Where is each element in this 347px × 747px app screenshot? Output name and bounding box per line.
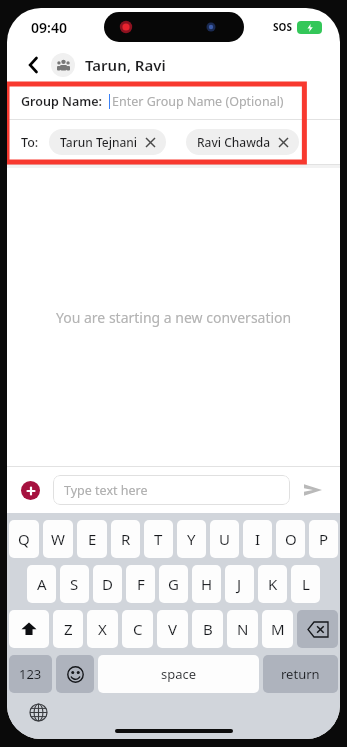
staticText: Ravi Chawda (197, 134, 271, 150)
staticText: B (203, 619, 213, 639)
button[interactable]: P (309, 520, 338, 558)
staticText: To: (21, 134, 39, 151)
button[interactable]: W (43, 520, 73, 558)
button[interactable]: L (291, 565, 320, 603)
staticText: 123 (19, 665, 42, 683)
button[interactable]: H (192, 565, 221, 603)
button[interactable]: Group Name: (7, 84, 340, 119)
staticText: Type text here (64, 482, 148, 499)
staticText: F (137, 574, 145, 594)
button[interactable]: Group avatar (51, 53, 75, 77)
staticText: P (319, 529, 329, 549)
button[interactable]: X (87, 610, 118, 648)
staticText: V (168, 619, 178, 639)
button[interactable]: F (126, 565, 155, 603)
staticText: U (219, 529, 230, 549)
button[interactable]: T (144, 520, 173, 558)
button[interactable]: Backspace (297, 610, 338, 648)
button[interactable]: 123 (9, 655, 52, 693)
button[interactable]: I (243, 520, 272, 558)
button[interactable]: E (77, 520, 107, 558)
button[interactable]: Ravi Chawda (186, 129, 299, 155)
staticText: I (255, 529, 261, 549)
button[interactable]: Send (300, 477, 326, 503)
staticText: J (237, 574, 242, 594)
button[interactable]: Emoji (56, 655, 94, 693)
staticText: A (37, 574, 47, 594)
staticText: return (281, 665, 320, 683)
button[interactable]: V (157, 610, 188, 648)
staticText: Tarun Tejnani (60, 134, 138, 150)
button[interactable]: Change keyboard language (29, 703, 48, 722)
staticText: SOS (273, 20, 292, 34)
staticText: L (302, 574, 310, 594)
button[interactable]: space (98, 655, 259, 693)
button[interactable]: Q (9, 520, 39, 558)
staticText: N (237, 619, 249, 639)
button[interactable]: Type text here (53, 475, 290, 505)
button[interactable]: S (60, 565, 89, 603)
button[interactable]: C (122, 610, 153, 648)
button[interactable]: Back (21, 52, 47, 78)
button[interactable]: G (159, 565, 188, 603)
staticText: R (121, 529, 131, 549)
button[interactable]: K (258, 565, 287, 603)
staticText: Y (187, 529, 196, 549)
button[interactable]: U (210, 520, 239, 558)
button[interactable]: Add attachment (21, 481, 40, 500)
button[interactable]: Z (53, 610, 83, 648)
staticText: 09:40 (31, 18, 67, 37)
staticText: You are starting a new conversation (56, 308, 292, 327)
staticText: Group Name: (21, 93, 103, 110)
staticText: C (133, 619, 143, 639)
staticText: X (98, 619, 107, 639)
staticText: T (154, 529, 163, 549)
button[interactable]: Y (177, 520, 206, 558)
button[interactable]: B (192, 610, 223, 648)
button[interactable]: J (225, 565, 254, 603)
staticText: M (271, 619, 285, 639)
button[interactable]: A (27, 565, 56, 603)
staticText: G (168, 574, 179, 594)
staticText: space (161, 665, 197, 683)
staticText: Tarun, Ravi (85, 55, 166, 75)
staticText: Q (18, 529, 30, 549)
staticText: W (51, 529, 65, 549)
staticText: K (268, 574, 278, 594)
staticText: O (285, 529, 297, 549)
button[interactable]: M (262, 610, 293, 648)
staticText: D (102, 574, 113, 594)
button[interactable]: O (276, 520, 305, 558)
staticText: S (70, 574, 79, 594)
button[interactable]: Tarun Tejnani (49, 129, 166, 155)
staticText: Z (64, 619, 73, 639)
staticText: H (201, 574, 213, 594)
staticText: Enter Group Name (Optional) (112, 93, 284, 110)
button[interactable]: D (93, 565, 122, 603)
staticText: E (88, 529, 97, 549)
button[interactable]: R (111, 520, 140, 558)
button[interactable]: return (263, 655, 338, 693)
button[interactable]: N (227, 610, 258, 648)
button[interactable]: Shift (9, 610, 49, 648)
